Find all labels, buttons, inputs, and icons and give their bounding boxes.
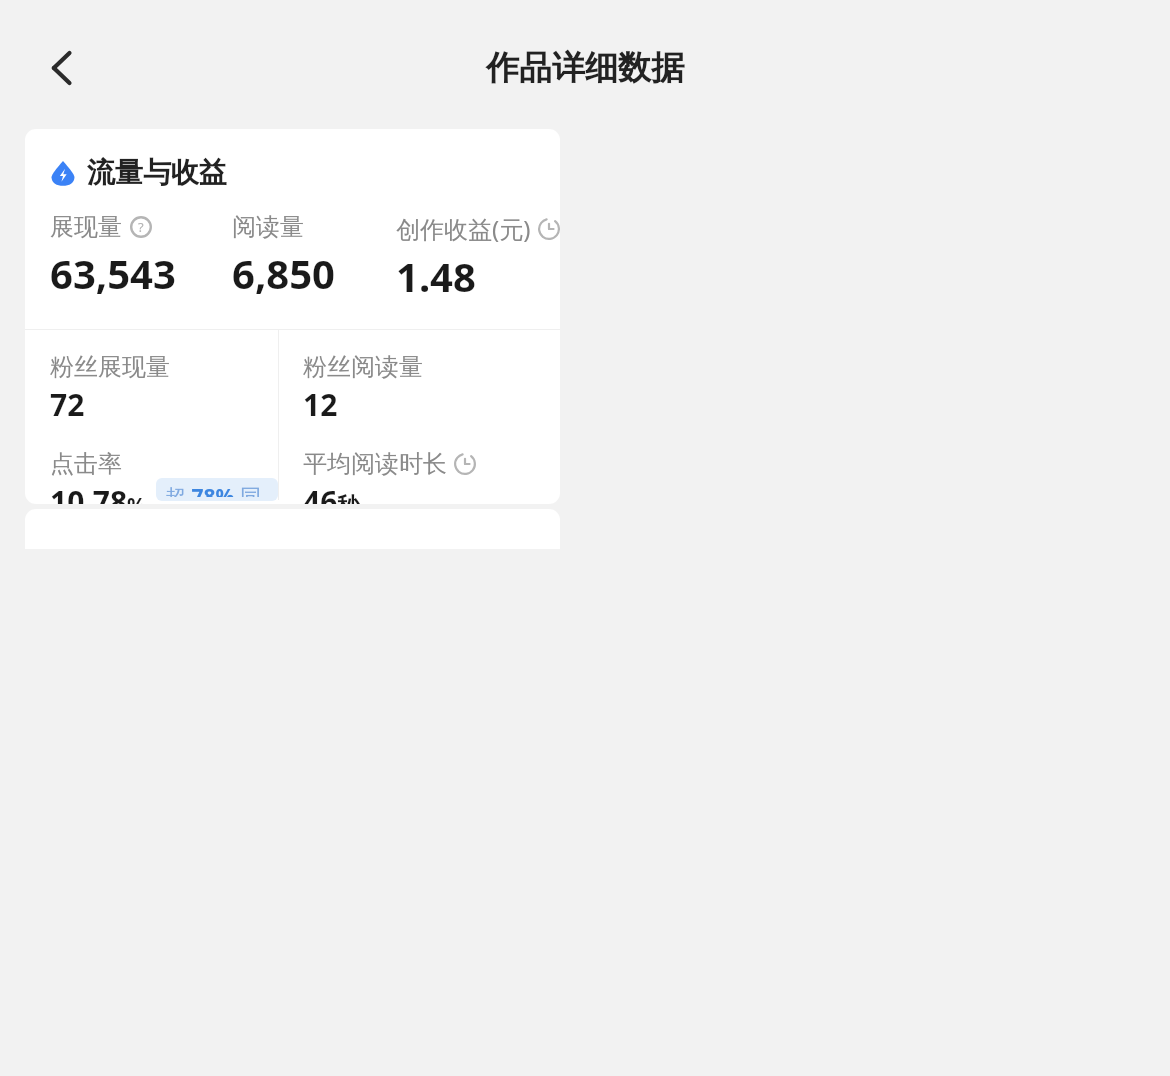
staticText: 46秒 [303, 481, 360, 504]
staticText: 12 [303, 384, 338, 425]
button[interactable]: 粉丝展现量 [50, 352, 170, 425]
staticText: 超 78% 同类作品 [165, 482, 269, 497]
staticText: 创作收益(元) [396, 212, 531, 245]
staticText: 粉丝展现量 [50, 352, 170, 382]
button[interactable]: Back [32, 38, 92, 98]
staticText: 表示数据延迟更新 [87, 168, 287, 199]
staticText: 点击率 [50, 449, 122, 479]
staticText: 作品详细数据 [486, 47, 684, 89]
staticText: 粉丝阅读量 [303, 352, 423, 382]
staticText: ? [138, 218, 144, 236]
button[interactable]: 展现量 [50, 212, 232, 300]
staticText: 72 [50, 384, 85, 425]
staticText: 6,850 [232, 246, 335, 300]
staticText: 63,543 [50, 246, 176, 300]
staticText: 10.78% [50, 481, 147, 504]
button[interactable]: 阅读量 [232, 212, 396, 300]
button[interactable]: 表示数据延迟更新 [48, 168, 287, 199]
staticText: 1.48 [396, 249, 476, 303]
button[interactable]: 点击率 [50, 449, 278, 504]
button[interactable]: 粉丝阅读量 [303, 352, 423, 425]
staticText: 展现量 [50, 212, 122, 242]
staticText: 阅读量 [232, 212, 304, 242]
button[interactable]: 创作收益(元) [396, 212, 560, 303]
staticText: 流量与收益 [87, 155, 227, 190]
button[interactable]: 平均阅读时长 [303, 449, 476, 504]
staticText: 平均阅读时长 [303, 449, 447, 479]
